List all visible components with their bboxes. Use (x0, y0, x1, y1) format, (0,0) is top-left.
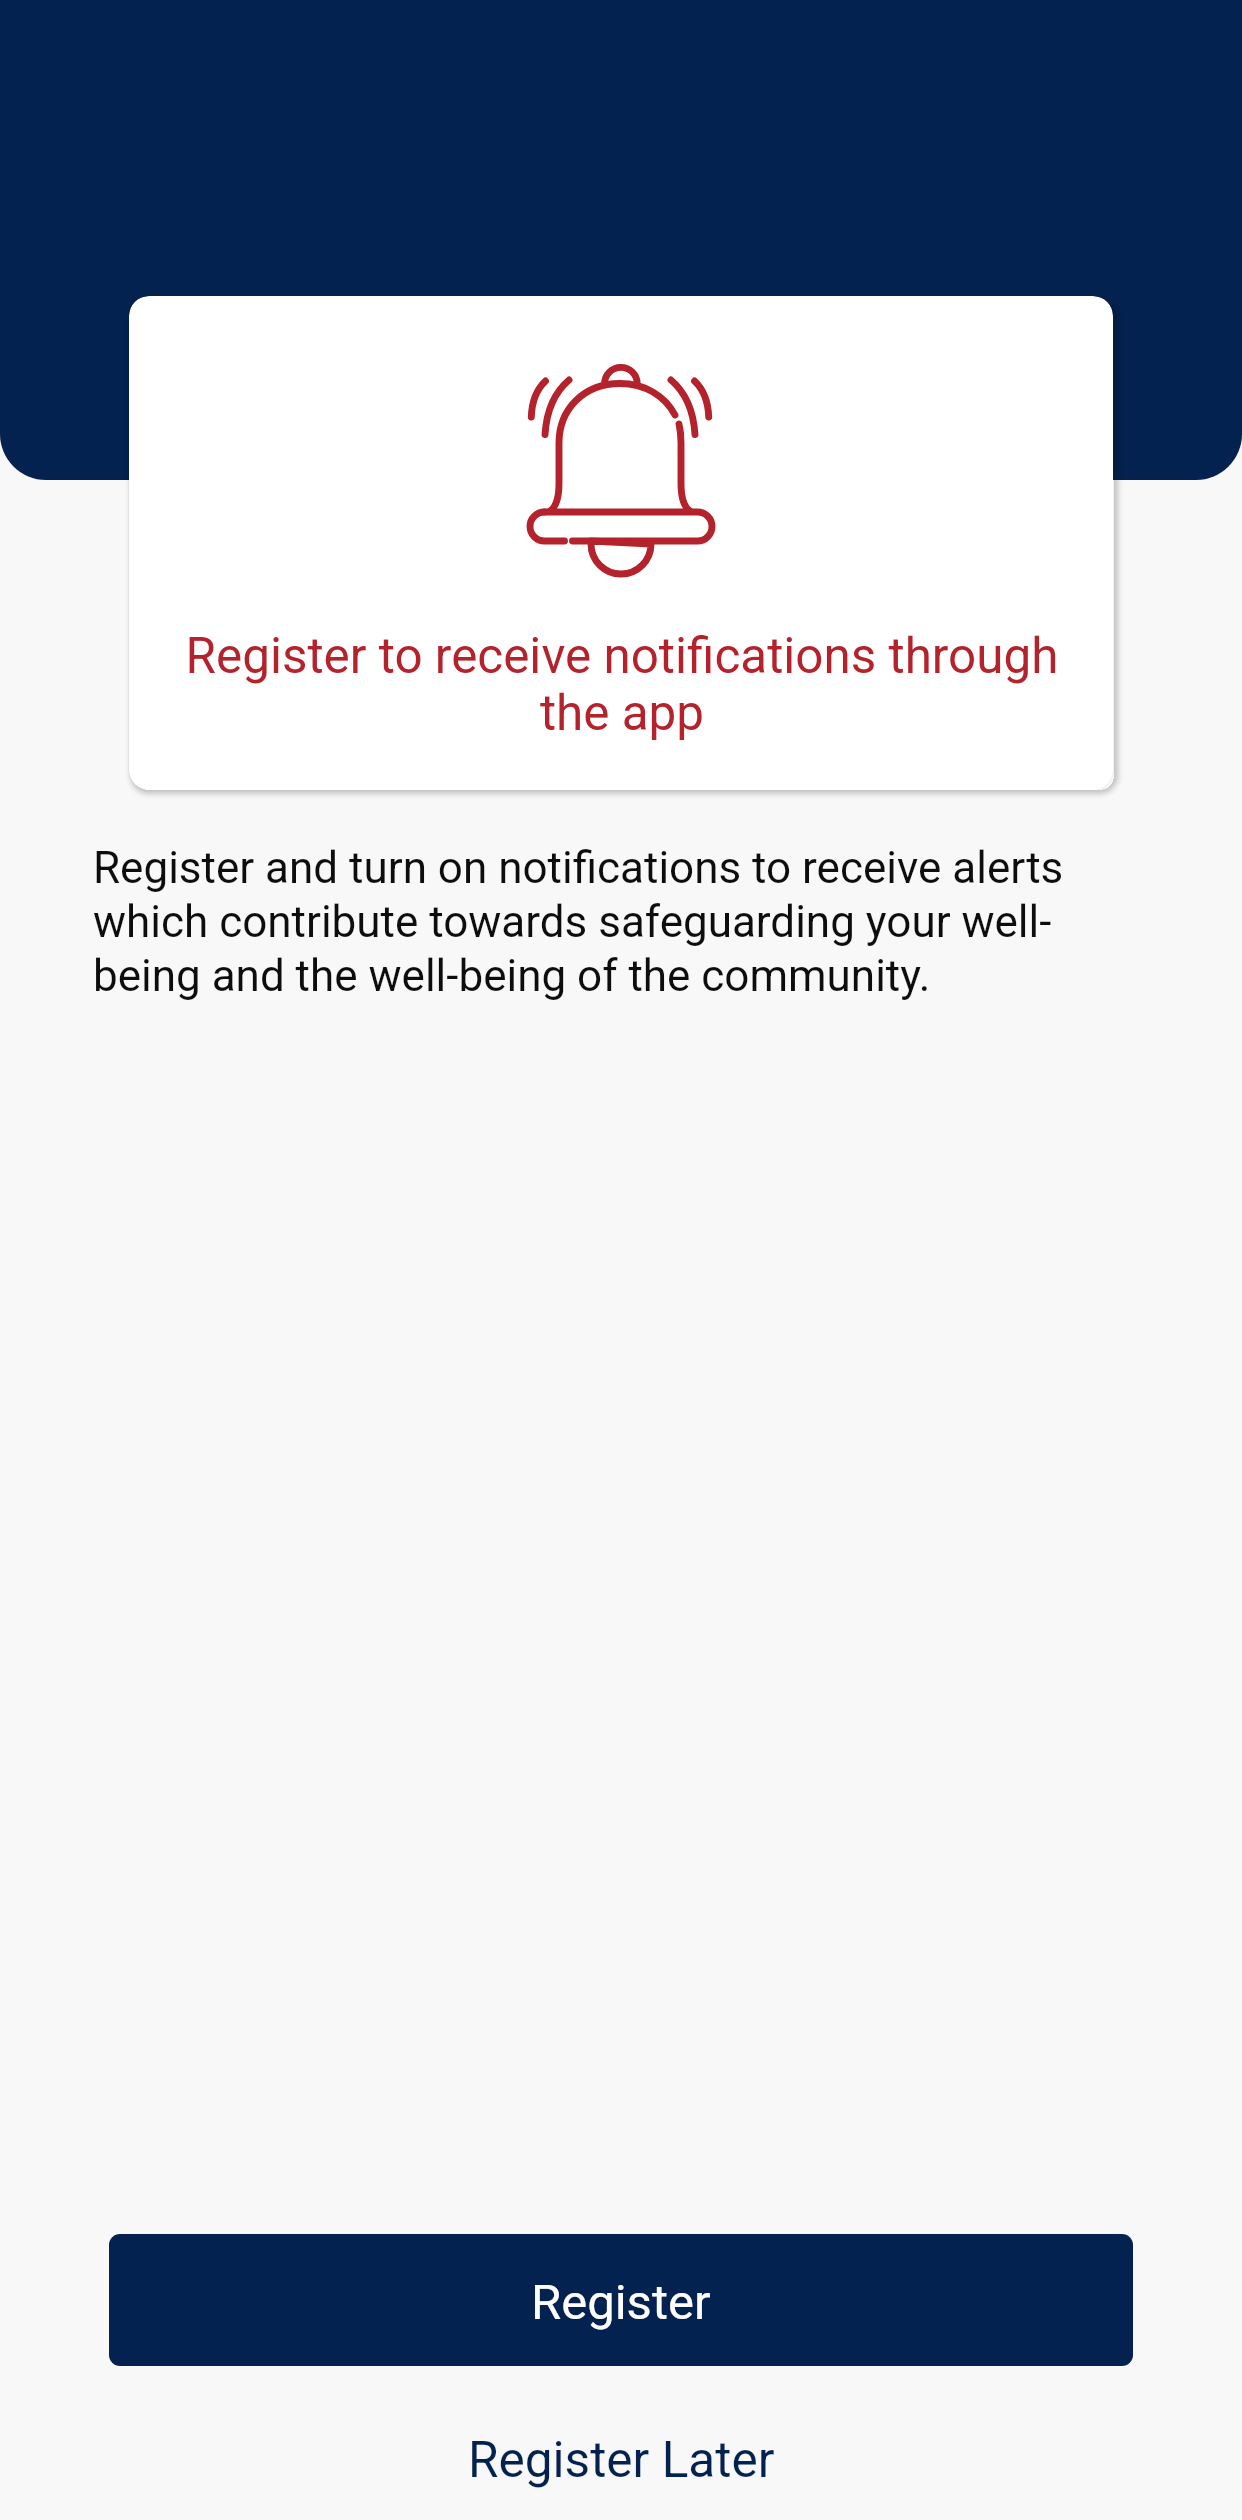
button[interactable]: Register (109, 2234, 1133, 2366)
other: Notifications (526, 365, 716, 576)
staticText: Register Later (468, 2431, 775, 2489)
staticText: Register to receive notifications throug… (180, 627, 1064, 742)
staticText: Register (531, 2274, 711, 2331)
staticText: Register and turn on notifications to re… (93, 842, 1093, 1001)
button[interactable]: Register Later (0, 2400, 1242, 2520)
